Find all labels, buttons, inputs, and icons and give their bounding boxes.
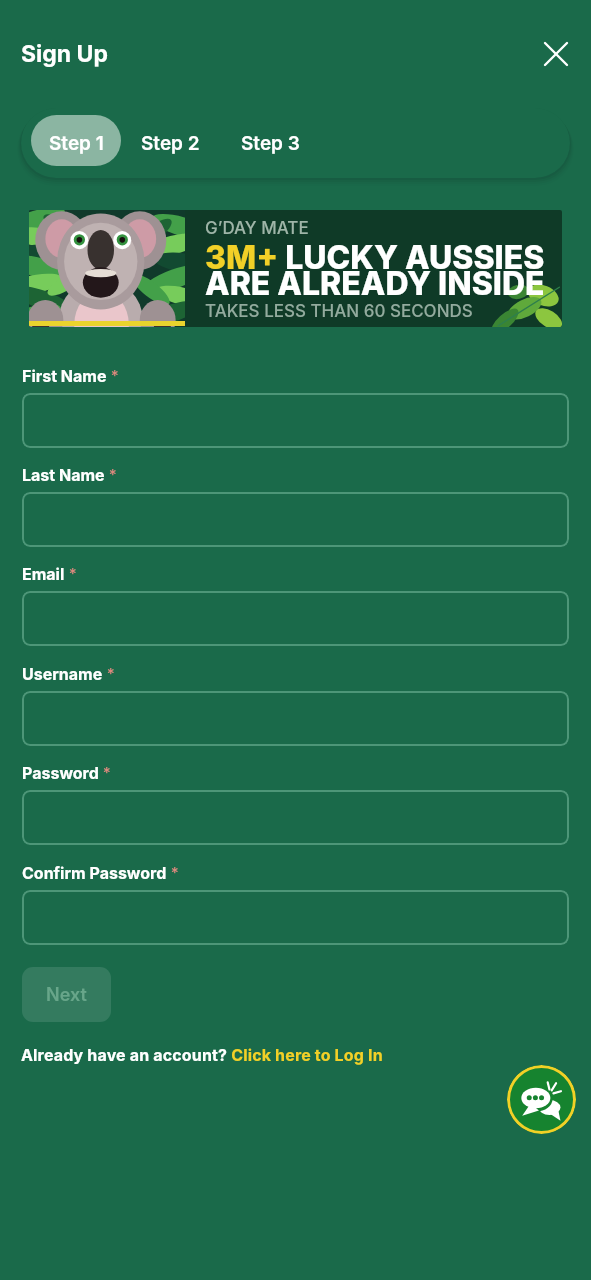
staticText: * bbox=[171, 863, 179, 881]
staticText: 3M+ LUCKY AUSSIES ARE ALREADY INSIDE bbox=[205, 238, 545, 303]
staticText: * bbox=[111, 366, 119, 384]
staticText: Email bbox=[22, 564, 65, 583]
staticText: G’DAY MATE bbox=[205, 218, 309, 239]
button[interactable] bbox=[22, 890, 569, 945]
staticText: Confirm Password bbox=[22, 863, 167, 882]
button[interactable]: Step 1 bbox=[31, 115, 121, 166]
button[interactable]: Open chat bbox=[507, 1065, 576, 1134]
button[interactable]: Next bbox=[22, 967, 111, 1022]
staticText: * bbox=[109, 465, 117, 483]
staticText: First Name bbox=[22, 366, 107, 385]
button[interactable] bbox=[22, 790, 569, 845]
staticText: Step 2 bbox=[141, 132, 200, 155]
staticText: Username bbox=[22, 664, 103, 683]
staticText: * bbox=[107, 664, 115, 682]
staticText: * bbox=[69, 564, 77, 582]
staticText: TAKES LESS THAN 60 SECONDS bbox=[205, 301, 473, 322]
staticText: Sign Up bbox=[21, 40, 108, 68]
button[interactable]: Step 2 bbox=[130, 115, 210, 166]
button[interactable]: Already have an account? Click here to L… bbox=[21, 1045, 383, 1064]
staticText: Already have an account? Click here to L… bbox=[21, 1045, 383, 1064]
button[interactable] bbox=[22, 591, 569, 646]
button[interactable]: Close bbox=[532, 30, 580, 78]
button[interactable] bbox=[22, 492, 569, 547]
staticText: Password bbox=[22, 763, 99, 782]
staticText: * bbox=[103, 763, 111, 781]
button[interactable] bbox=[22, 691, 569, 746]
button[interactable] bbox=[22, 393, 569, 448]
staticText: Next bbox=[46, 984, 87, 1006]
staticText: Step 3 bbox=[241, 132, 300, 155]
staticText: Step 1 bbox=[49, 132, 104, 155]
staticText: Last Name bbox=[22, 465, 105, 484]
button[interactable]: Step 3 bbox=[230, 115, 310, 166]
